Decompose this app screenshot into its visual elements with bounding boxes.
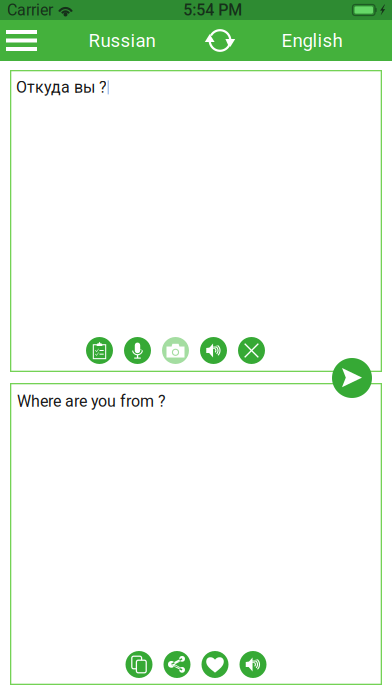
button[interactable]: Copy — [125, 651, 152, 678]
button[interactable]: Voice input — [124, 337, 151, 364]
staticText: Откуда вы ? — [16, 78, 107, 97]
button[interactable]: English — [262, 20, 362, 61]
staticText: Carrier — [7, 1, 53, 19]
button[interactable]: Favorite — [201, 651, 228, 678]
button[interactable]: Speak — [239, 651, 266, 678]
button[interactable]: Russian — [72, 20, 172, 61]
staticText: Russian — [88, 30, 155, 51]
button[interactable]: Dictionary — [86, 337, 113, 364]
button[interactable]: Translate — [332, 358, 372, 398]
staticText: Where are you from ? — [17, 392, 166, 411]
button[interactable]: Speak — [200, 337, 227, 364]
button[interactable]: Camera — [162, 337, 189, 364]
button[interactable]: Share — [163, 651, 190, 678]
button[interactable]: Menu — [0, 20, 53, 61]
button[interactable]: Swap languages — [198, 20, 242, 61]
staticText: English — [281, 30, 342, 51]
staticText: 5:54 PM — [183, 1, 242, 19]
button[interactable]: Clear — [238, 337, 265, 364]
